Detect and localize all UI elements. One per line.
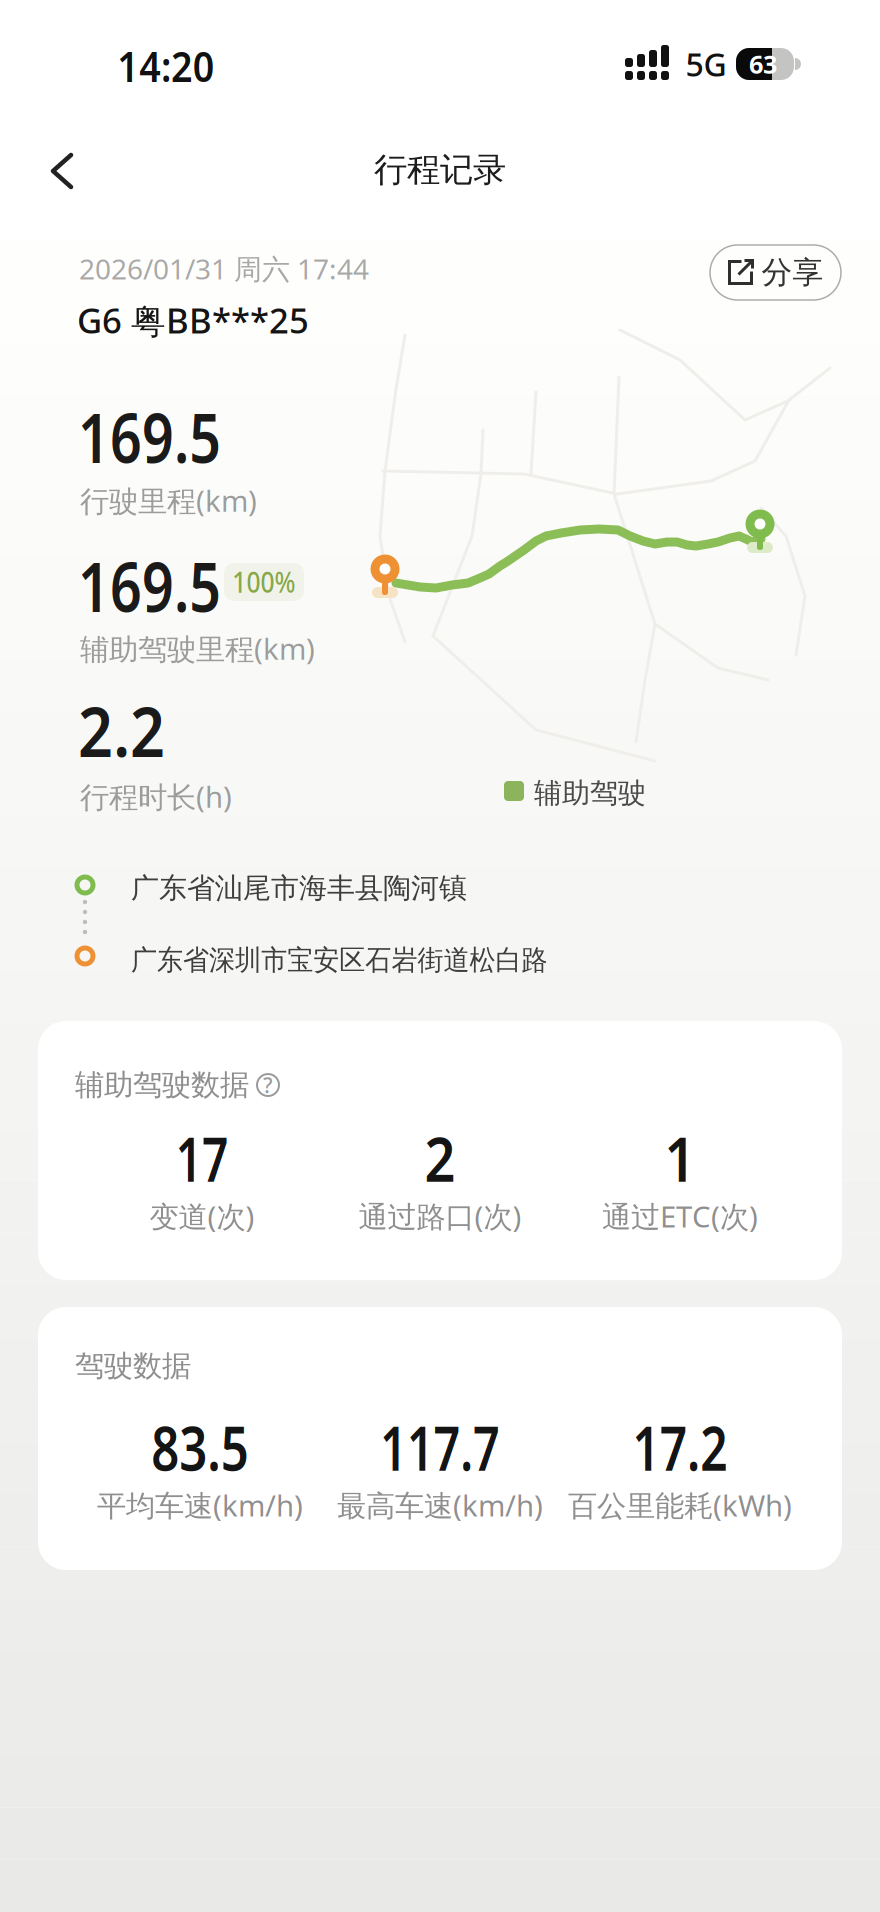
staticText: 17.2: [619, 1406, 741, 1488]
staticText: 83.5: [139, 1406, 261, 1488]
staticText: 通过路口(次): [358, 1196, 521, 1235]
staticText: 分享: [761, 254, 823, 291]
staticText: 行程记录: [374, 149, 506, 190]
staticText: 117.7: [361, 1406, 518, 1488]
staticText: 通过ETC(次): [602, 1196, 758, 1235]
button[interactable]: 返回: [40, 141, 84, 201]
staticText: G6 粤BB***25: [77, 297, 309, 343]
staticText: 5G: [685, 43, 726, 85]
staticText: 行驶里程(km): [80, 481, 257, 520]
staticText: 百公里能耗(kWh): [568, 1485, 792, 1524]
staticText: 100%: [228, 563, 300, 601]
staticText: 14:20: [112, 39, 219, 93]
staticText: 1: [662, 1117, 697, 1199]
staticText: 2.2: [78, 684, 177, 776]
staticText: 平均车速(km/h): [97, 1485, 303, 1524]
staticText: 最高车速(km/h): [337, 1485, 543, 1524]
staticText: 广东省深圳市宝安区石岩街道松白路: [131, 943, 579, 977]
staticText: 17: [167, 1117, 237, 1199]
staticText: ?: [263, 1071, 273, 1099]
staticText: 2026/01/31 周六 17:44: [79, 250, 369, 287]
staticText: 驾驶数据: [75, 1348, 191, 1384]
staticText: 广东省汕尾市海丰县陶河镇: [131, 871, 467, 905]
staticText: 169.5: [78, 539, 257, 631]
staticText: 辅助驾驶里程(km): [80, 629, 315, 668]
button[interactable]: 辅助驾驶数据说明: [255, 1072, 281, 1098]
staticText: 169.5: [78, 390, 257, 482]
button[interactable]: 分享: [710, 245, 841, 300]
staticText: 辅助驾驶数据: [75, 1067, 249, 1103]
staticText: 行程时长(h): [80, 777, 232, 816]
staticText: 变道(次): [149, 1196, 254, 1235]
staticText: 2: [422, 1117, 457, 1199]
staticText: 63: [749, 47, 777, 81]
staticText: 辅助驾驶: [534, 776, 646, 810]
